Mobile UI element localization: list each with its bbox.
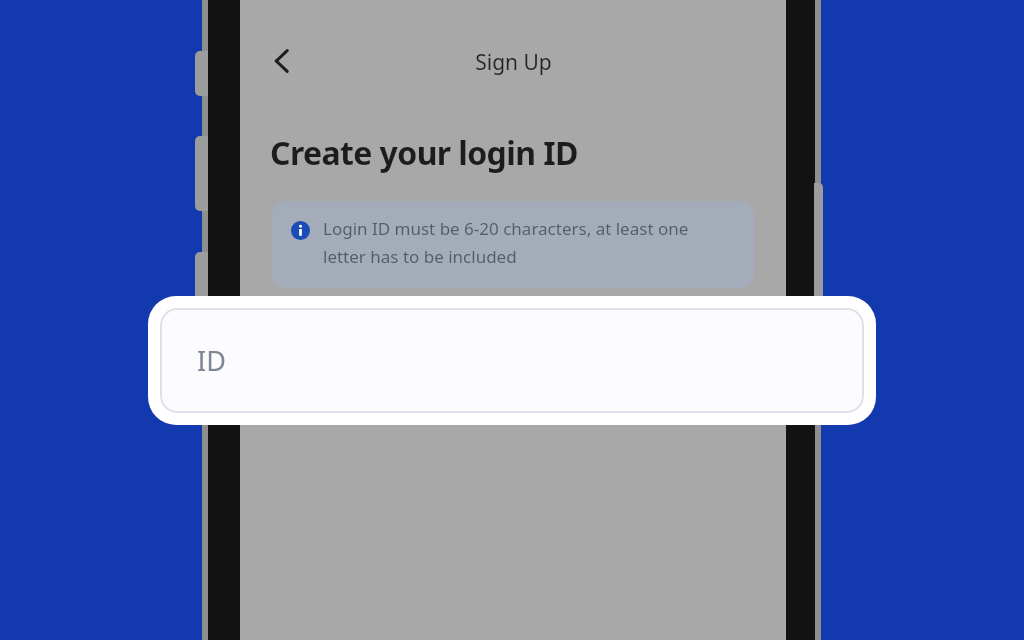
button[interactable]: Volume xyxy=(195,136,208,211)
staticText: Create your login ID xyxy=(270,131,578,175)
staticText: Sign Up xyxy=(475,48,552,77)
button[interactable]: Power xyxy=(195,51,208,96)
staticText: ID xyxy=(197,342,226,379)
button[interactable]: ID xyxy=(160,308,864,413)
button[interactable]: Back xyxy=(259,38,305,84)
staticText: Login ID must be 6-20 characters, at lea… xyxy=(323,217,730,268)
